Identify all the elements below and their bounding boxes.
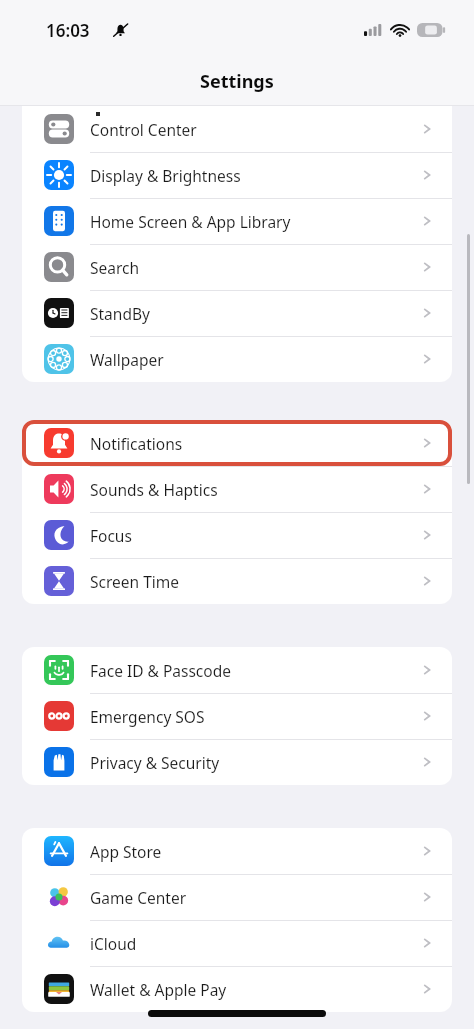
button[interactable]: Focus [22, 512, 452, 558]
staticText: Privacy & Security [90, 752, 220, 773]
button[interactable]: Game Center [22, 874, 452, 920]
button[interactable]: Notifications [22, 420, 452, 466]
staticText: Home Screen & App Library [90, 211, 291, 232]
staticText: iCloud [90, 933, 137, 954]
staticText: Settings [200, 69, 274, 94]
staticText: Screen Time [90, 571, 179, 592]
staticText: Game Center [90, 887, 187, 908]
staticText: Search [90, 257, 140, 278]
button[interactable]: Display & Brightness [22, 152, 452, 198]
staticText: Display & Brightness [90, 165, 241, 186]
staticText: Notifications [90, 433, 183, 454]
staticText: Focus [90, 525, 132, 546]
staticText: Control Center [90, 119, 197, 140]
button[interactable]: Emergency SOS [22, 693, 452, 739]
staticText: Wallpaper [90, 349, 164, 370]
button[interactable]: Search [22, 244, 452, 290]
staticText: Wallet & Apple Pay [90, 979, 227, 1000]
button[interactable]: Wallpaper [22, 336, 452, 382]
button[interactable]: Home Screen & App Library [22, 198, 452, 244]
button[interactable]: Privacy & Security [22, 739, 452, 785]
button[interactable]: Sounds & Haptics [22, 466, 452, 512]
button[interactable]: Wallet & Apple Pay [22, 966, 452, 1012]
staticText: Face ID & Passcode [90, 660, 231, 681]
button[interactable]: Control Center [22, 106, 452, 152]
staticText: StandBy [90, 303, 150, 324]
staticText: Sounds & Haptics [90, 479, 218, 500]
button[interactable]: StandBy [22, 290, 452, 336]
button[interactable]: iCloud [22, 920, 452, 966]
button[interactable]: Screen Time [22, 558, 452, 604]
staticText: Emergency SOS [90, 706, 205, 727]
button[interactable]: Face ID & Passcode [22, 647, 452, 693]
staticText: 16:03 [46, 19, 90, 42]
staticText: App Store [90, 841, 162, 862]
button[interactable]: App Store [22, 828, 452, 874]
